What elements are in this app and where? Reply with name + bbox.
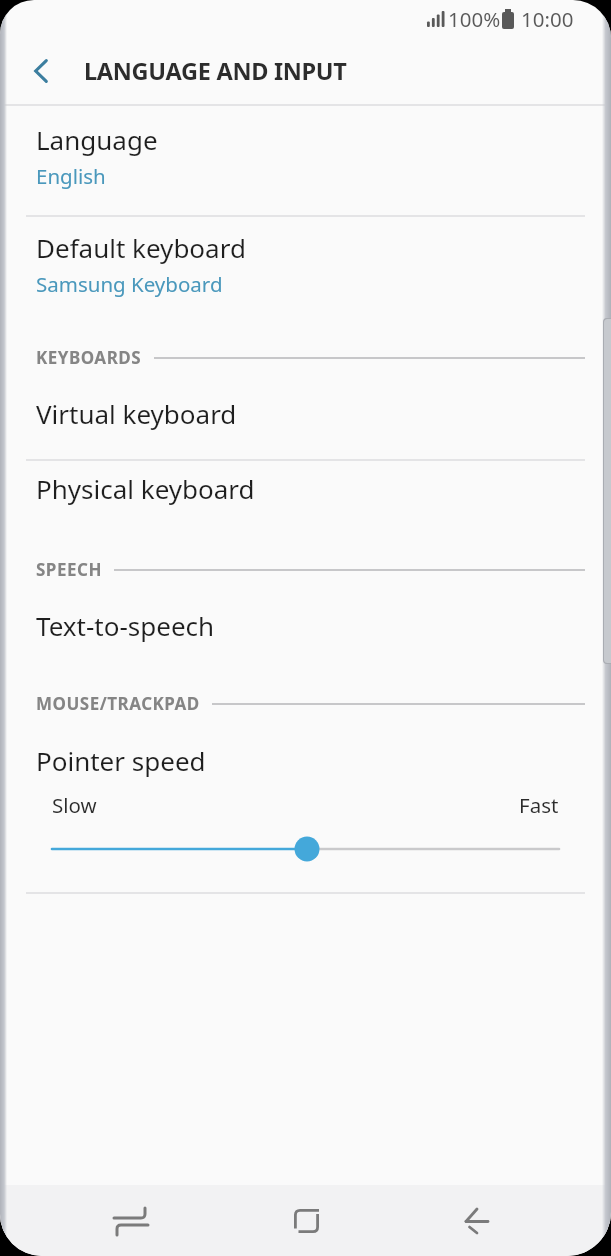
staticText: KEYBOARDS [36, 346, 142, 369]
staticText: SPEECH [36, 558, 102, 581]
button[interactable] [0, 38, 62, 104]
button[interactable] [276, 1191, 336, 1251]
staticText: English [36, 162, 106, 190]
staticText: Slow [52, 791, 97, 819]
staticText: MOUSE/TRACKPAD [36, 692, 200, 715]
staticText: Default keyboard [36, 230, 246, 265]
button[interactable] [447, 1191, 507, 1251]
button[interactable]: Default keyboard [0, 217, 611, 318]
button[interactable]: Text-to-speech [0, 581, 611, 662]
button[interactable]: Virtual keyboard [0, 369, 611, 459]
staticText: LANGUAGE AND INPUT [84, 55, 347, 87]
button[interactable] [0, 836, 611, 862]
button[interactable]: Physical keyboard [0, 461, 611, 528]
staticText: Virtual keyboard [36, 396, 237, 431]
staticText: Pointer speed [36, 743, 206, 778]
staticText: 10:00 [521, 5, 574, 33]
staticText: Physical keyboard [36, 471, 255, 506]
button[interactable]: Pointer speed [0, 715, 611, 778]
staticText: Fast [519, 791, 559, 819]
staticText: Text-to-speech [36, 608, 215, 643]
button[interactable]: Language [0, 106, 611, 215]
staticText: 100% [448, 5, 501, 33]
staticText: Samsung Keyboard [36, 270, 223, 298]
staticText: Language [36, 122, 158, 157]
button[interactable] [101, 1191, 161, 1251]
